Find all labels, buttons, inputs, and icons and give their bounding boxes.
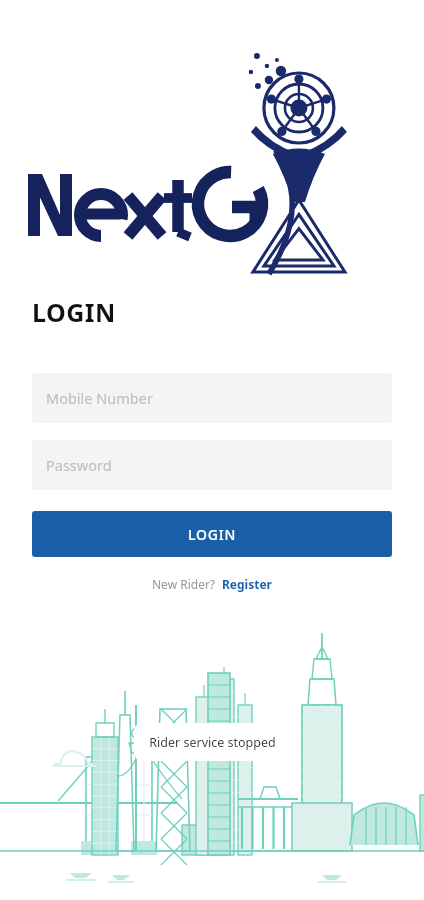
staticText: New Rider? [152,576,216,592]
staticText: Register [222,576,272,592]
button[interactable]: Mobile Number [32,373,392,423]
staticText: LOGIN [32,295,116,329]
button[interactable]: Register [222,576,272,592]
staticText: Mobile Number [46,388,153,408]
button[interactable]: Password [32,440,392,490]
staticText: Rider service stopped [149,734,276,751]
staticText: LOGIN [188,525,237,544]
button[interactable]: LOGIN [32,511,392,557]
staticText: Password [46,455,112,475]
